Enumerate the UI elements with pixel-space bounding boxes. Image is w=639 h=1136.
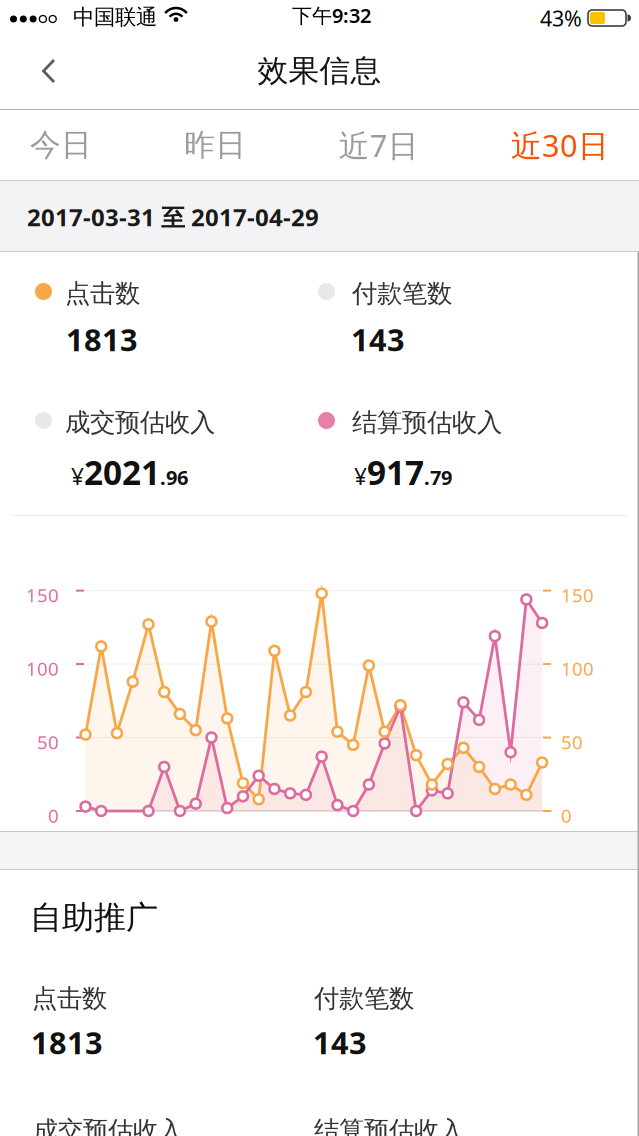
staticText: 150 [26,583,59,607]
button[interactable]: 昨日 [184,108,246,182]
button[interactable]: 今日 [30,108,92,182]
staticText: 近30日 [511,125,609,165]
staticText: 中国联通 [73,4,157,30]
staticText: 2017-03-31 至 2017-04-29 [27,201,319,233]
staticText: 0 [48,803,59,828]
staticText: 昨日 [184,126,246,164]
staticText: 成交预估收入 [65,407,215,438]
staticText: 付款笔数 [314,983,414,1014]
staticText: 下午9:32 [292,2,371,29]
staticText: .96 [160,464,188,491]
staticText: 150 [561,583,594,607]
staticText: 50 [561,729,583,754]
button[interactable]: 近7日 [339,107,419,183]
button[interactable]: Back [0,40,80,102]
staticText: .79 [424,464,452,491]
staticText: 近7日 [339,125,419,165]
staticText: 0 [561,803,572,828]
staticText: 1813 [66,319,138,360]
staticText: 50 [37,729,59,754]
staticText: 结算预估收入 [352,407,502,438]
staticText: 结算预估收入 [314,1115,464,1136]
staticText: 效果信息 [257,52,381,90]
staticText: 成交预估收入 [33,1115,183,1136]
staticText: 2021 [84,450,160,494]
staticText: 143 [351,319,405,360]
staticText: 1813 [31,1022,103,1063]
staticText: 点击数 [32,983,107,1014]
button[interactable]: 近30日 [511,107,609,183]
staticText: 自助推广 [30,898,158,937]
staticText: ¥ [71,461,84,491]
staticText: 今日 [30,126,92,164]
staticText: 100 [26,656,59,681]
staticText: 143 [313,1022,367,1063]
staticText: 点击数 [65,278,140,309]
staticText: ¥ [354,461,367,491]
staticText: 43% [540,4,582,32]
staticText: 付款笔数 [352,278,452,309]
staticText: 100 [561,656,594,681]
staticText: 917 [367,450,424,494]
